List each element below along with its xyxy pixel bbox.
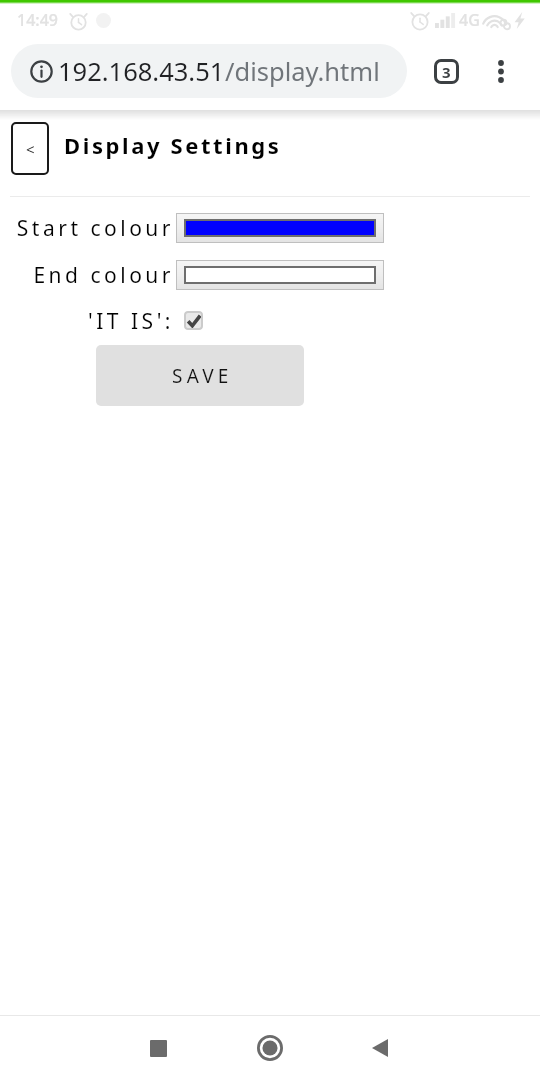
staticText: 3 [442,62,451,82]
button[interactable]: Switch tabs, 3 open [428,53,465,90]
button[interactable]: Choose colour [176,213,384,243]
staticText: Display Settings [64,130,282,160]
staticText: 14:49 [17,9,58,31]
staticText: 'IT IS': [88,307,174,336]
staticText: SAVE [172,363,233,389]
staticText: Start colour [16,214,174,243]
staticText: 4G [459,9,480,31]
button[interactable]: IT IS checkbox, checked [184,311,203,330]
staticText: End colour [33,261,174,290]
button[interactable]: SAVE [96,345,304,406]
staticText: /display.html [225,54,380,89]
button[interactable]: 192.168.43.51 [11,44,407,98]
button[interactable]: Back [11,122,49,175]
staticText: < [26,139,35,159]
button[interactable]: Home [237,1016,303,1080]
button[interactable]: Customize and control Chrome [483,53,519,89]
button[interactable]: Back [349,1016,415,1080]
button[interactable]: Choose colour [176,260,384,290]
staticText: 192.168.43.51 [58,54,225,89]
button[interactable]: Recent apps [125,1016,191,1080]
